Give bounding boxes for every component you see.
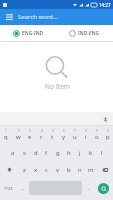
button[interactable]: d: [30, 144, 41, 161]
button[interactable]: IND-ENG: [56, 25, 113, 41]
button[interactable]: Open navigation menu: [3, 11, 15, 23]
staticText: y: [62, 133, 66, 141]
button[interactable]: n: [74, 161, 85, 178]
button[interactable]: Backspace: [96, 161, 113, 178]
button[interactable]: 8: [80, 126, 91, 144]
staticText: x: [34, 166, 38, 174]
staticText: No Item: [45, 82, 70, 91]
staticText: e: [28, 133, 32, 141]
button[interactable]: ,: [17, 178, 28, 198]
staticText: 9: [96, 129, 98, 133]
staticText: s: [23, 149, 26, 157]
staticText: f: [45, 149, 48, 157]
button[interactable]: m: [85, 161, 96, 178]
staticText: ?123: [4, 186, 13, 191]
button[interactable]: c: [41, 161, 52, 178]
staticText: 0: [107, 129, 109, 133]
staticText: 6: [63, 129, 65, 133]
button[interactable]: g: [52, 144, 63, 161]
staticText: 5: [52, 129, 54, 133]
button[interactable]: f: [41, 144, 52, 161]
button[interactable]: 7: [69, 126, 80, 144]
staticText: r: [40, 133, 43, 141]
button[interactable]: Shift: [0, 161, 18, 178]
staticText: m: [88, 166, 94, 174]
staticText: k: [89, 149, 93, 157]
staticText: d: [34, 149, 38, 157]
button[interactable]: z: [18, 161, 30, 178]
button[interactable]: Search: [98, 183, 109, 194]
button[interactable]: 2: [12, 126, 24, 144]
staticText: 1: [5, 129, 7, 133]
staticText: c: [45, 166, 48, 174]
button[interactable]: k: [85, 144, 96, 161]
button[interactable]: 3: [24, 126, 36, 144]
button[interactable]: l: [96, 144, 107, 161]
staticText: 2: [18, 129, 20, 133]
staticText: z: [23, 166, 26, 174]
staticText: i: [85, 133, 87, 141]
staticText: ENG-IND: [22, 30, 44, 37]
staticText: l: [101, 149, 103, 157]
button[interactable]: a: [7, 144, 19, 161]
staticText: g: [56, 149, 60, 157]
staticText: ,: [22, 184, 24, 192]
staticText: 3: [29, 129, 31, 133]
staticText: p: [106, 133, 110, 141]
button[interactable]: Search word...: [18, 10, 113, 24]
staticText: w: [16, 133, 21, 141]
button[interactable]: 0: [102, 126, 113, 144]
staticText: IND-ENG: [78, 30, 100, 37]
button[interactable]: s: [19, 144, 30, 161]
button[interactable]: 1: [0, 126, 12, 144]
staticText: t: [51, 133, 54, 141]
staticText: a: [11, 149, 15, 157]
staticText: Search word...: [18, 13, 58, 21]
staticText: .: [88, 184, 90, 192]
button[interactable]: j: [74, 144, 85, 161]
staticText: 14:27: [99, 2, 111, 8]
button[interactable]: 5: [47, 126, 58, 144]
staticText: u: [73, 133, 77, 141]
button[interactable]: Voice input: [101, 115, 110, 124]
staticText: b: [67, 166, 71, 174]
staticText: n: [78, 166, 82, 174]
button[interactable]: 6: [58, 126, 69, 144]
staticText: h: [67, 149, 71, 157]
button[interactable]: h: [63, 144, 74, 161]
button[interactable]: .: [83, 178, 94, 198]
button[interactable]: ENG-IND: [0, 25, 56, 41]
button[interactable]: v: [52, 161, 63, 178]
button[interactable]: x: [30, 161, 41, 178]
staticText: o: [95, 133, 99, 141]
staticText: 4: [41, 129, 43, 133]
button[interactable]: ?123: [0, 178, 17, 198]
staticText: q: [4, 133, 8, 141]
button[interactable]: b: [63, 161, 74, 178]
button[interactable]: 9: [91, 126, 102, 144]
staticText: 8: [85, 129, 87, 133]
staticText: 7: [74, 129, 76, 133]
button[interactable]: 4: [36, 126, 47, 144]
staticText: j: [79, 149, 81, 157]
staticText: v: [56, 166, 60, 174]
